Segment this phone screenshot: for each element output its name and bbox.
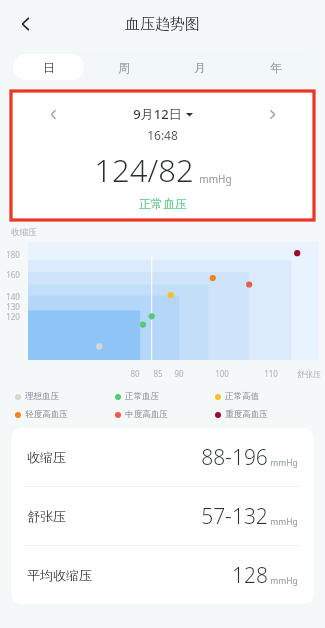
button[interactable]: 平均收缩压 (11, 546, 314, 604)
button[interactable]: Next day (261, 104, 283, 124)
button[interactable]: 收缩压 (11, 428, 314, 486)
staticText: 128 (232, 561, 268, 590)
staticText: 中度高血压 (125, 409, 168, 420)
button[interactable]: Previous day (42, 104, 64, 124)
staticText: 88-196 (201, 443, 268, 472)
button[interactable]: 年 (240, 54, 312, 80)
staticText: 100 (215, 368, 229, 379)
staticText: mmHg (270, 575, 298, 587)
staticText: 血压趋势图 (125, 15, 200, 34)
staticText: 周 (118, 60, 130, 75)
staticText: 9月12日 (133, 105, 182, 123)
staticText: 90 (174, 368, 184, 379)
button[interactable]: 日 (13, 54, 84, 80)
staticText: 月 (194, 60, 206, 75)
staticText: 80 (130, 368, 140, 379)
staticText: 110 (264, 368, 278, 379)
staticText: 理想血压 (25, 391, 59, 402)
button[interactable]: Back (6, 4, 46, 44)
staticText: 124/82 (94, 149, 194, 191)
staticText: 正常血压 (139, 196, 187, 211)
staticText: mmHg (199, 172, 232, 186)
button[interactable]: 舒张压 (11, 487, 314, 545)
staticText: 正常血压 (125, 391, 159, 402)
button[interactable]: 周 (88, 54, 160, 80)
staticText: mmHg (270, 457, 298, 469)
staticText: 轻度高血压 (25, 409, 68, 420)
staticText: 180 (6, 249, 20, 260)
staticText: 16:48 (147, 127, 178, 143)
button[interactable]: 月 (164, 54, 236, 80)
button[interactable]: 9月12日 (133, 105, 193, 123)
staticText: 日 (43, 60, 55, 75)
staticText: mmHg (270, 516, 298, 528)
staticText: 收缩压 (11, 227, 37, 238)
staticText: 平均收缩压 (27, 567, 92, 583)
staticText: 85 (153, 368, 163, 379)
staticText: 舒张压 (297, 369, 321, 379)
staticText: 120 (6, 311, 20, 322)
staticText: 收缩压 (27, 449, 66, 465)
staticText: 140 (6, 291, 20, 302)
staticText: 正常高值 (225, 391, 259, 402)
staticText: 年 (270, 60, 282, 75)
staticText: 重度高血压 (225, 409, 268, 420)
staticText: 130 (6, 301, 20, 312)
staticText: 57-132 (201, 502, 268, 531)
staticText: 160 (6, 269, 20, 280)
staticText: 舒张压 (27, 508, 66, 524)
